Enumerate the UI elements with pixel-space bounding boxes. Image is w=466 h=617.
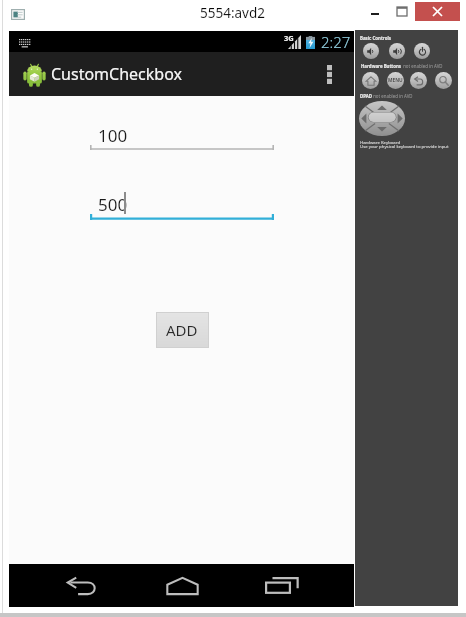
- staticText: MENU: [388, 77, 403, 84]
- staticText: 2:27: [321, 32, 351, 52]
- button[interactable]: Recent apps: [250, 564, 314, 607]
- staticText: not enabled in AVD: [372, 93, 413, 99]
- staticText: 100: [98, 124, 128, 147]
- button[interactable]: Menu: [387, 72, 404, 89]
- staticText: Hardware Buttons: [361, 63, 402, 69]
- button[interactable]: Back: [49, 564, 113, 607]
- button[interactable]: Close: [415, 2, 460, 21]
- staticText: Hardware Keyboard: [360, 139, 401, 145]
- staticText: not enabled in AVD: [402, 63, 443, 69]
- button[interactable]: Home: [150, 564, 214, 607]
- staticText: DPAD: [360, 93, 372, 99]
- staticText: 3G: [284, 33, 294, 43]
- button[interactable]: More options: [312, 52, 354, 96]
- button[interactable]: Maximise: [382, 2, 415, 21]
- button[interactable]: Minimise: [352, 2, 397, 21]
- button[interactable]: Back: [410, 72, 427, 89]
- staticText: 500: [98, 193, 128, 216]
- staticText: Basic Controls: [360, 35, 391, 41]
- staticText: 5554:avd2: [200, 4, 265, 22]
- button[interactable]: Home: [362, 72, 379, 89]
- button[interactable]: Volume down: [363, 43, 379, 59]
- button[interactable]: Search: [435, 72, 452, 89]
- button[interactable]: ADD: [156, 312, 209, 348]
- staticText: ADD: [166, 320, 198, 340]
- staticText: Use your physical keyboard to provide in…: [360, 143, 449, 149]
- button[interactable]: Volume up: [389, 43, 405, 59]
- staticText: CustomCheckbox: [51, 63, 182, 85]
- button[interactable]: Power: [414, 43, 430, 59]
